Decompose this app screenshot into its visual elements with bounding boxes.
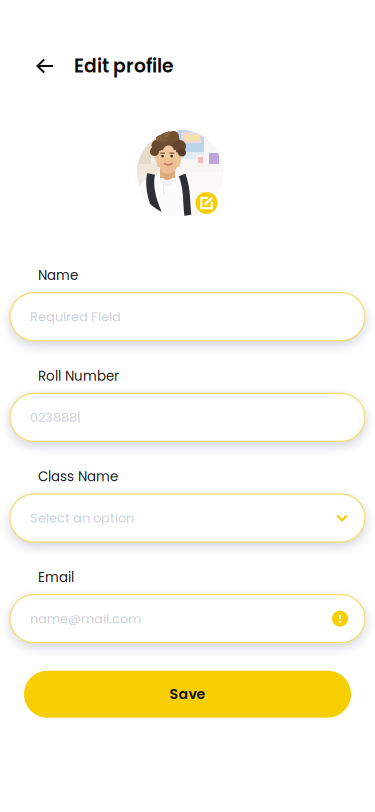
staticText: Name (38, 266, 78, 285)
staticText: Required Field (30, 308, 121, 326)
button[interactable]: Back (28, 49, 62, 83)
button[interactable]: Save (0, 671, 375, 718)
staticText: name@mail.com (30, 610, 141, 628)
button[interactable]: name@mail.com (0, 587, 375, 643)
staticText: Save (169, 684, 205, 704)
staticText: Edit profile (74, 53, 174, 79)
staticText: 023888| (30, 408, 81, 426)
staticText: Email (38, 568, 74, 587)
button[interactable]: Required Field (0, 285, 375, 341)
staticText: Roll Number (38, 367, 119, 385)
staticText: Class Name (38, 467, 118, 486)
button[interactable]: Change photo (195, 192, 217, 214)
button[interactable]: 023888| (0, 385, 375, 441)
button[interactable]: Select an option (0, 486, 375, 542)
staticText: Select an option (30, 509, 134, 527)
